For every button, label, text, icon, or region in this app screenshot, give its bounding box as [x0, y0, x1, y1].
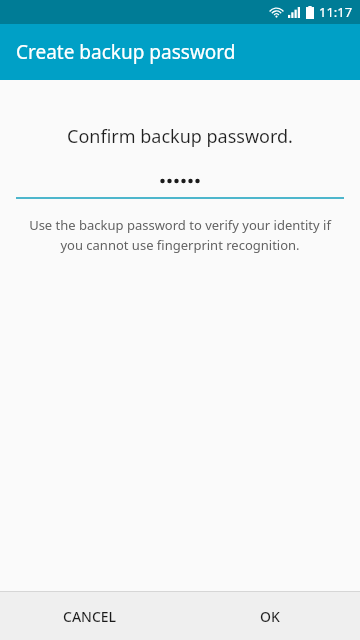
button[interactable]: Backup password entry [16, 174, 344, 199]
button[interactable]: CANCEL [0, 592, 180, 640]
staticText: Use the backup password to verify your i… [24, 216, 336, 254]
other: Signal [288, 7, 300, 18]
staticText: OK [260, 607, 280, 626]
staticText: Create backup password [16, 39, 236, 65]
other: Wi-Fi [270, 7, 283, 18]
staticText: Confirm backup password. [0, 124, 360, 149]
staticText: CANCEL [63, 607, 117, 626]
button[interactable]: OK [180, 592, 360, 640]
other: Battery [306, 6, 314, 19]
staticText: 11:17 [319, 3, 353, 21]
